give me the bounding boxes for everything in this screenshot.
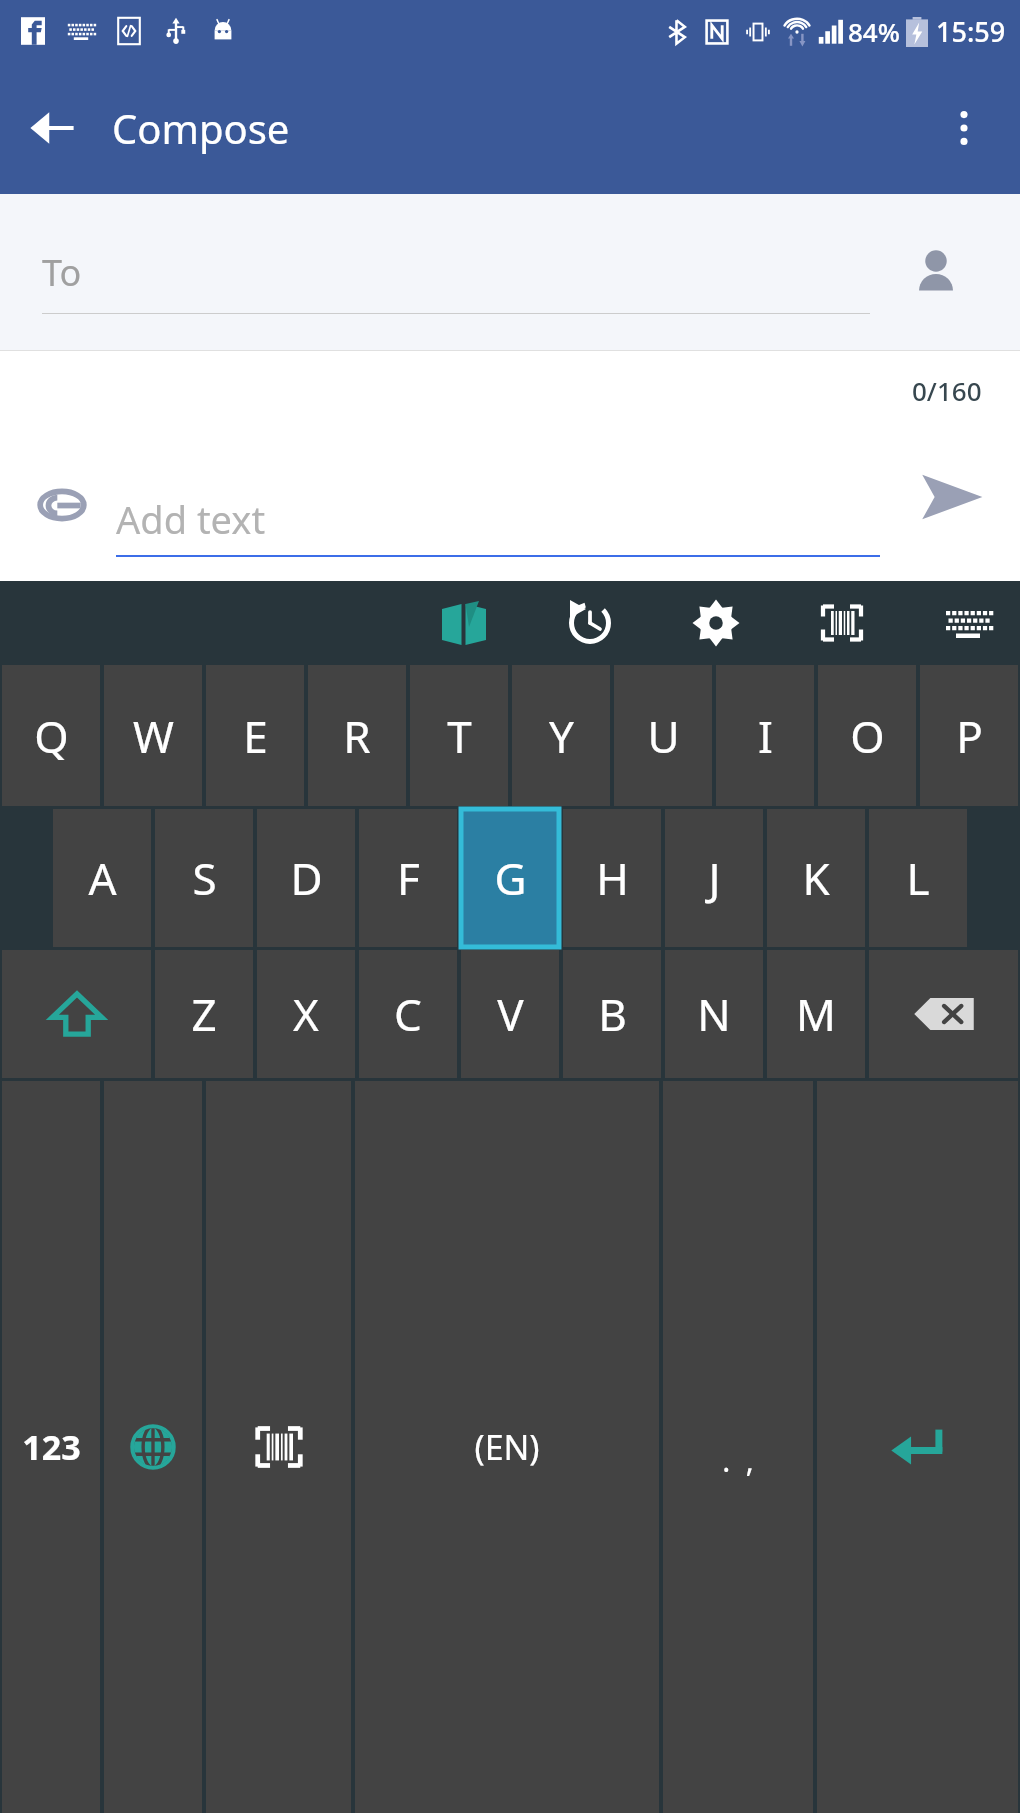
staticText: W: [133, 706, 174, 766]
button[interactable]: X: [257, 950, 355, 1078]
staticText: 15:59: [936, 13, 1006, 50]
button[interactable]: H: [563, 809, 661, 947]
staticText: Q: [34, 706, 69, 766]
button[interactable]: Add text: [116, 493, 880, 557]
staticText: K: [802, 848, 830, 908]
button[interactable]: Q: [2, 665, 100, 806]
button[interactable]: Shift: [2, 950, 151, 1078]
button[interactable]: N: [665, 950, 763, 1078]
button[interactable]: W: [104, 665, 202, 806]
button[interactable]: (EN): [355, 1081, 659, 1813]
button[interactable]: Attach: [22, 465, 102, 545]
staticText: S: [192, 848, 217, 908]
staticText: 123: [22, 1424, 81, 1470]
staticText: Z: [191, 984, 217, 1044]
button[interactable]: F: [359, 809, 457, 947]
staticText: Compose: [112, 101, 290, 155]
button[interactable]: Keyboard: [930, 585, 1006, 661]
staticText: . ,: [722, 1440, 754, 1481]
button[interactable]: . ,: [663, 1081, 813, 1813]
button[interactable]: B: [563, 950, 661, 1078]
staticText: N: [697, 984, 731, 1044]
button[interactable]: A: [53, 809, 151, 947]
button[interactable]: I: [716, 665, 814, 806]
button[interactable]: T: [410, 665, 508, 806]
button[interactable]: M: [767, 950, 865, 1078]
staticText: To: [42, 248, 82, 297]
button[interactable]: D: [257, 809, 355, 947]
button[interactable]: Backspace: [869, 950, 1018, 1078]
button[interactable]: History: [552, 585, 628, 661]
staticText: A: [88, 848, 117, 908]
button[interactable]: Pick contact: [898, 234, 974, 310]
staticText: H: [596, 848, 629, 908]
staticText: X: [293, 984, 319, 1044]
button[interactable]: L: [869, 809, 967, 947]
staticText: M: [796, 984, 836, 1044]
button[interactable]: To: [42, 248, 870, 314]
staticText: F: [397, 848, 420, 908]
staticText: P: [956, 706, 983, 766]
button[interactable]: Enter: [817, 1081, 1018, 1813]
button[interactable]: More options: [924, 88, 1004, 168]
staticText: T: [447, 706, 472, 766]
button[interactable]: V: [461, 950, 559, 1078]
staticText: I: [758, 706, 773, 766]
button[interactable]: C: [359, 950, 457, 1078]
staticText: Y: [549, 706, 574, 766]
button[interactable]: Scan barcode: [804, 585, 880, 661]
button[interactable]: Scan barcode: [206, 1081, 351, 1813]
button[interactable]: R: [308, 665, 406, 806]
staticText: Add text: [116, 493, 266, 545]
button[interactable]: Back: [12, 88, 92, 168]
button[interactable]: Dictionary: [426, 585, 502, 661]
staticText: B: [598, 984, 627, 1044]
button[interactable]: U: [614, 665, 712, 806]
staticText: L: [906, 848, 930, 908]
button[interactable]: Change language: [104, 1081, 202, 1813]
button[interactable]: P: [920, 665, 1018, 806]
button[interactable]: S: [155, 809, 253, 947]
button[interactable]: O: [818, 665, 916, 806]
staticText: 84%: [848, 14, 900, 49]
staticText: E: [243, 706, 268, 766]
button[interactable]: Send: [906, 451, 998, 543]
staticText: 0/160: [912, 373, 982, 408]
button[interactable]: K: [767, 809, 865, 947]
staticText: U: [647, 706, 680, 766]
staticText: R: [343, 706, 371, 766]
button[interactable]: G: [461, 809, 559, 947]
button[interactable]: Y: [512, 665, 610, 806]
staticText: D: [290, 848, 323, 908]
button[interactable]: 123: [2, 1081, 100, 1813]
staticText: C: [394, 984, 422, 1044]
button[interactable]: E: [206, 665, 304, 806]
staticText: G: [494, 848, 527, 908]
button[interactable]: J: [665, 809, 763, 947]
staticText: (EN): [474, 1424, 540, 1470]
button[interactable]: Settings: [678, 585, 754, 661]
staticText: O: [850, 706, 885, 766]
staticText: J: [708, 848, 721, 908]
staticText: V: [497, 984, 524, 1044]
button[interactable]: Z: [155, 950, 253, 1078]
